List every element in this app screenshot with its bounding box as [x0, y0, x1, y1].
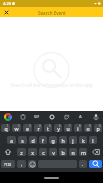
- button[interactable]: b: [59, 148, 67, 156]
- staticText: y: [57, 125, 60, 132]
- staticText: 5: [49, 124, 51, 128]
- staticText: t: [47, 125, 49, 132]
- staticText: 7: [69, 124, 71, 128]
- button[interactable]: e: [23, 124, 32, 132]
- button[interactable]: f: [39, 136, 47, 144]
- button[interactable]: j: [69, 136, 77, 144]
- staticText: e: [26, 125, 29, 132]
- staticText: Search all the information in the app: [10, 82, 93, 89]
- button[interactable]: i: [74, 124, 82, 132]
- staticText: z: [20, 149, 23, 156]
- staticText: GIF: [34, 115, 40, 119]
- staticText: b: [61, 149, 65, 156]
- button[interactable]: g: [49, 136, 57, 144]
- staticText: q: [4, 125, 8, 132]
- button[interactable]: d: [29, 136, 37, 144]
- button[interactable]: m: [79, 148, 87, 156]
- button[interactable]: Comma: [17, 160, 26, 168]
- button[interactable]: k: [79, 136, 87, 144]
- button[interactable]: p: [94, 124, 102, 132]
- button[interactable]: c: [39, 148, 47, 156]
- button[interactable]: n: [69, 148, 77, 156]
- staticText: 1: [7, 124, 9, 128]
- staticText: w: [14, 125, 19, 132]
- button[interactable]: s: [18, 136, 27, 144]
- button[interactable]: GIF: [31, 111, 42, 122]
- staticText: u: [66, 125, 70, 132]
- staticText: k: [82, 137, 85, 144]
- button[interactable]: Voice input: [90, 111, 101, 122]
- staticText: Search Event: [38, 10, 66, 16]
- staticText: s: [21, 137, 24, 144]
- button[interactable]: Emoji: [28, 160, 36, 168]
- staticText: .: [82, 161, 84, 168]
- button[interactable]: Close search: [1, 7, 11, 17]
- button[interactable]: r: [34, 124, 42, 132]
- button[interactable]: Google search: [2, 111, 13, 122]
- staticText: r: [37, 125, 40, 132]
- button[interactable]: q: [1, 124, 10, 132]
- staticText: 8: [79, 124, 81, 128]
- staticText: 0: [99, 124, 101, 128]
- staticText: n: [71, 149, 75, 156]
- button[interactable]: x: [28, 148, 37, 156]
- button[interactable]: a: [7, 136, 16, 144]
- button[interactable]: Search: [89, 160, 102, 168]
- button[interactable]: Backspace: [89, 148, 102, 156]
- button[interactable]: Clipboard: [17, 111, 28, 122]
- staticText: ?123: [4, 162, 12, 167]
- button[interactable]: l: [89, 136, 97, 144]
- button[interactable]: Translate: [75, 111, 86, 122]
- button[interactable]: w: [12, 124, 21, 132]
- staticText: i: [77, 125, 79, 132]
- button[interactable]: h: [59, 136, 67, 144]
- staticText: c: [42, 149, 45, 156]
- staticText: g: [51, 137, 55, 144]
- button[interactable]: Period: [79, 160, 87, 168]
- button[interactable]: Shift: [1, 148, 15, 156]
- staticText: p: [96, 125, 100, 132]
- button[interactable]: v: [49, 148, 57, 156]
- staticText: 6: [59, 124, 61, 128]
- button[interactable]: t: [44, 124, 52, 132]
- staticText: 9: [89, 124, 91, 128]
- staticText: f: [42, 137, 44, 144]
- staticText: A: [79, 114, 82, 119]
- staticText: m: [81, 149, 86, 156]
- staticText: o: [86, 125, 90, 132]
- staticText: 2: [18, 124, 20, 128]
- staticText: ,: [21, 161, 23, 168]
- staticText: 3: [29, 124, 31, 128]
- staticText: a: [10, 137, 13, 144]
- button[interactable]: y: [54, 124, 62, 132]
- button[interactable]: u: [64, 124, 72, 132]
- staticText: h: [61, 137, 65, 144]
- staticText: 4: [39, 124, 41, 128]
- button[interactable]: Symbols: [1, 160, 15, 168]
- staticText: 4:20: [3, 1, 11, 6]
- button[interactable]: Stickers: [61, 111, 72, 122]
- staticText: l: [92, 137, 94, 144]
- staticText: v: [52, 149, 55, 156]
- staticText: x: [31, 149, 34, 156]
- button[interactable]: Settings: [46, 111, 57, 122]
- button[interactable]: o: [84, 124, 92, 132]
- staticText: d: [31, 137, 35, 144]
- button[interactable]: z: [17, 148, 26, 156]
- staticText: j: [72, 137, 74, 144]
